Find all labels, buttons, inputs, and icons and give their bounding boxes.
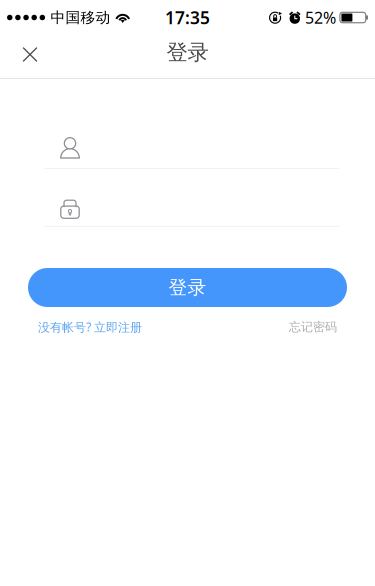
button[interactable]: 登录	[28, 268, 347, 307]
staticText: 没有帐号? 立即注册	[38, 319, 142, 335]
staticText: 忘记密码	[289, 320, 337, 334]
button[interactable]: 没有帐号? 立即注册	[38, 319, 142, 335]
staticText: 登录	[166, 39, 208, 66]
staticText: 17:35	[165, 6, 210, 29]
staticText: 52%	[305, 7, 336, 28]
button[interactable]: 忘记密码	[289, 320, 337, 334]
staticText: 登录	[168, 276, 206, 299]
staticText: 中国移动	[50, 8, 110, 26]
button[interactable]: Close	[0, 28, 52, 76]
